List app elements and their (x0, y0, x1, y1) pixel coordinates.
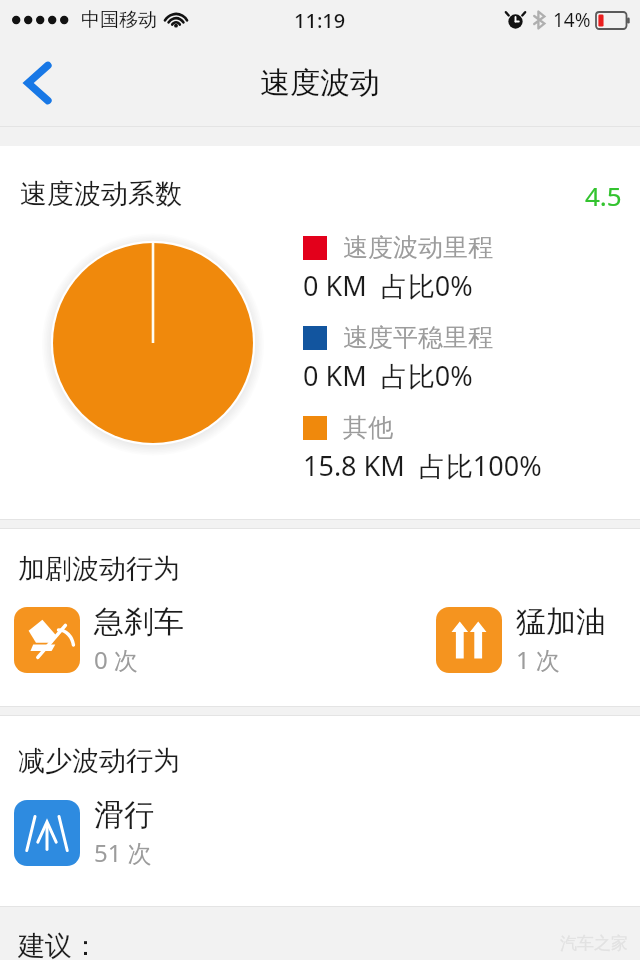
button[interactable]: Hard acceleration (436, 603, 606, 676)
staticText: 猛加油 (516, 603, 606, 641)
staticText: 15.8 KM 占比100% (303, 447, 542, 484)
staticText: 51 次 (94, 836, 152, 869)
button[interactable]: Hard braking (14, 603, 184, 676)
staticText: 加剧波动行为 (18, 552, 180, 586)
staticText: 速度波动系数 (20, 177, 182, 211)
staticText: 11:19 (294, 7, 346, 34)
button[interactable]: Coasting (14, 796, 154, 869)
staticText: 滑行 (94, 796, 154, 834)
staticText: 减少波动行为 (18, 744, 180, 778)
staticText: 速度平稳里程 (343, 322, 493, 353)
staticText: 0 次 (94, 643, 138, 676)
staticText: 中国移动 (81, 8, 157, 32)
staticText: 14% (553, 7, 591, 33)
button[interactable]: Back (0, 40, 76, 126)
staticText: 急刹车 (94, 603, 184, 641)
staticText: 建议： (18, 929, 99, 960)
staticText: 汽车之家 (560, 933, 628, 954)
staticText: 4.5 (585, 178, 622, 213)
staticText: 速度波动 (260, 64, 380, 102)
staticText: 速度波动里程 (343, 232, 493, 263)
staticText: 1 次 (516, 643, 560, 676)
staticText: 其他 (343, 412, 393, 443)
staticText: 0 KM 占比0% (303, 357, 473, 394)
staticText: 0 KM 占比0% (303, 267, 473, 304)
